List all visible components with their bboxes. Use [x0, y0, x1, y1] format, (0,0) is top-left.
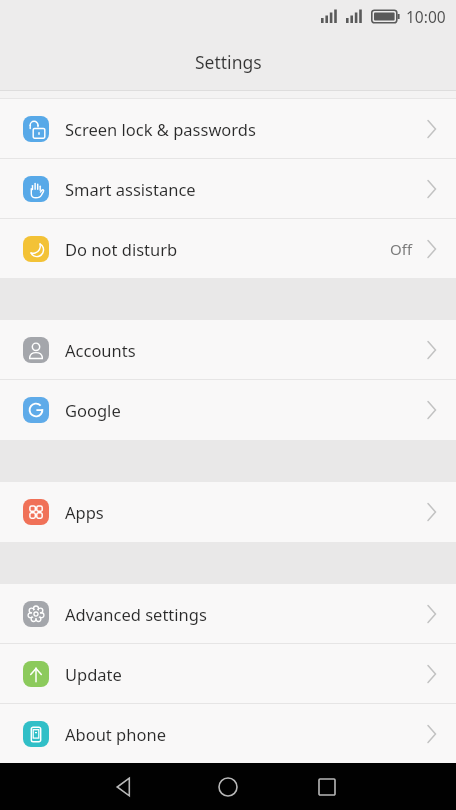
button[interactable]: Advanced settings [0, 584, 456, 644]
button[interactable]: Smart assistance [0, 159, 456, 219]
button[interactable]: Do not disturb [0, 219, 456, 278]
button[interactable] [307, 763, 347, 810]
staticText: Settings [195, 50, 262, 74]
staticText: Apps [65, 501, 104, 523]
button[interactable]: Accounts [0, 320, 456, 380]
button[interactable]: Screen lock & passwords [0, 99, 456, 159]
staticText: Google [65, 399, 121, 421]
staticText: Smart assistance [65, 178, 196, 200]
button[interactable]: About phone [0, 704, 456, 763]
staticText: 10:00 [406, 6, 446, 27]
button[interactable] [208, 763, 248, 810]
button[interactable]: Apps [0, 482, 456, 542]
button[interactable]: Update [0, 644, 456, 704]
staticText: Advanced settings [65, 603, 207, 625]
button[interactable] [104, 763, 144, 810]
staticText: Update [65, 663, 122, 685]
staticText: Accounts [65, 339, 136, 361]
button[interactable]: Google [0, 380, 456, 440]
staticText: Screen lock & passwords [65, 118, 256, 140]
staticText: Do not disturb [65, 238, 178, 260]
staticText: About phone [65, 723, 166, 745]
staticText: Off [390, 239, 413, 259]
